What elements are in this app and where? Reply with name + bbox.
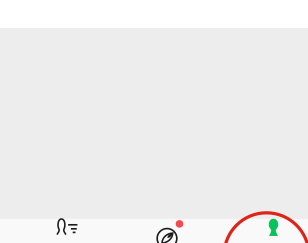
button[interactable]: Discover [126,218,208,243]
button[interactable]: Contacts [27,218,109,243]
button[interactable]: Me [232,218,308,243]
